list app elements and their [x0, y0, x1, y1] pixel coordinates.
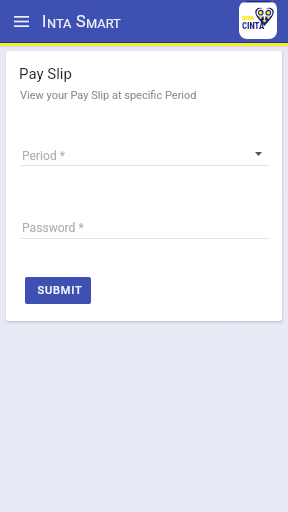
- staticText: MART: [86, 16, 121, 31]
- staticText: CINTA: [242, 21, 265, 31]
- staticText: INTA: [242, 14, 254, 21]
- button[interactable]: Inta Cinta logo: [239, 1, 277, 39]
- staticText: I: [42, 12, 47, 31]
- button[interactable]: Password *: [20, 221, 268, 241]
- button[interactable]: Menu: [9, 9, 33, 33]
- button[interactable]: SUBMIT: [25, 277, 91, 304]
- staticText: NTA: [47, 16, 72, 31]
- staticText: S: [72, 12, 86, 31]
- staticText: Password *: [22, 221, 84, 235]
- button[interactable]: Open period dropdown: [251, 147, 265, 161]
- staticText: Period *: [22, 149, 65, 163]
- staticText: SUBMIT: [37, 284, 83, 297]
- staticText: View your Pay Slip at specific Period: [20, 89, 197, 102]
- button[interactable]: Period *: [20, 149, 268, 169]
- staticText: Pay Slip: [19, 65, 72, 83]
